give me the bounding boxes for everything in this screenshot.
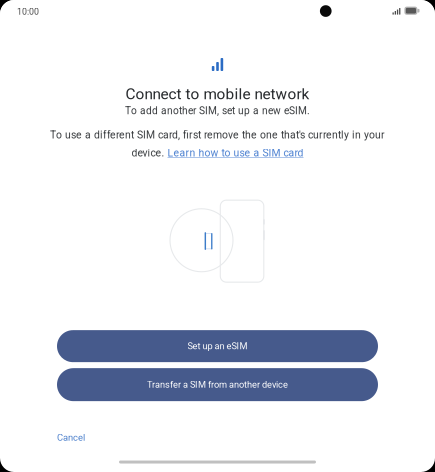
staticText: Set up an eSIM <box>187 341 247 352</box>
staticText: Cancel <box>57 432 85 443</box>
staticText: To add another SIM, set up a new eSIM. <box>125 105 310 117</box>
staticText: Learn how to use a SIM card <box>167 147 303 159</box>
staticText: device. <box>131 147 167 159</box>
staticText: Transfer a SIM from another device <box>147 379 288 390</box>
staticText: Connect to mobile network <box>125 85 309 103</box>
button[interactable]: Set up an eSIM <box>57 330 378 362</box>
staticText: To use a different SIM card, first remov… <box>50 129 385 141</box>
button[interactable]: Learn how to use a SIM card <box>167 147 303 159</box>
button[interactable]: Transfer a SIM from another device <box>57 368 378 401</box>
staticText: 10:00 <box>17 6 39 17</box>
button[interactable]: Cancel <box>51 427 91 448</box>
